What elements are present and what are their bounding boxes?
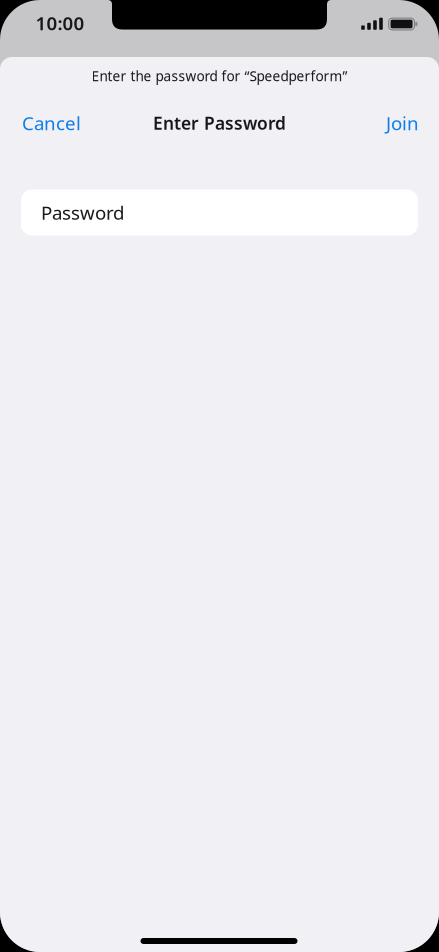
staticText: Cancel (22, 110, 81, 136)
button[interactable]: Password (21, 189, 418, 235)
staticText: Enter Password (153, 111, 286, 135)
staticText: 10:00 (35, 10, 84, 36)
staticText: Password (41, 200, 124, 225)
staticText: Enter the password for “Speedperform” (91, 67, 347, 85)
button[interactable]: Join (364, 101, 439, 145)
staticText: Join (386, 110, 419, 136)
button[interactable]: Cancel (0, 101, 103, 145)
